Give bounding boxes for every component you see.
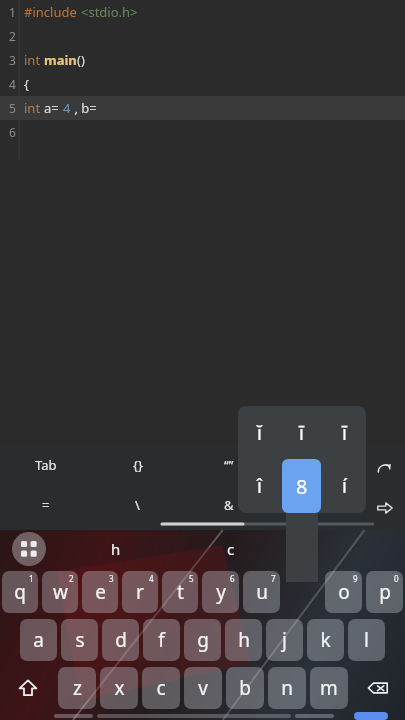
staticText: ĭ bbox=[257, 420, 262, 446]
staticText: () bbox=[77, 51, 85, 69]
staticText: 9 bbox=[353, 573, 358, 584]
button[interactable]: o bbox=[325, 571, 362, 613]
staticText: \ bbox=[135, 496, 140, 514]
staticText: b bbox=[239, 675, 251, 701]
button[interactable]: , bbox=[274, 485, 365, 525]
button[interactable]: Period bbox=[295, 714, 334, 718]
button[interactable]: 8 bbox=[282, 459, 321, 513]
button[interactable]: n bbox=[268, 667, 306, 709]
staticText: o bbox=[338, 579, 350, 605]
staticText: f bbox=[158, 627, 165, 653]
button[interactable]: ī bbox=[280, 406, 323, 459]
button[interactable]: e bbox=[82, 571, 118, 613]
staticText: 5 bbox=[189, 573, 194, 584]
staticText: { bbox=[24, 75, 29, 93]
button[interactable]: = bbox=[0, 485, 92, 525]
staticText: , b= bbox=[71, 99, 97, 117]
button[interactable]: Redo bbox=[365, 448, 405, 488]
button[interactable]: “” bbox=[183, 445, 274, 485]
button[interactable]: Enter bbox=[354, 712, 388, 720]
button[interactable]: s bbox=[61, 619, 98, 661]
button[interactable]: Menu bbox=[0, 530, 58, 568]
staticText: 6 bbox=[9, 124, 16, 140]
button[interactable]: q bbox=[2, 571, 38, 613]
staticText: ; bbox=[318, 456, 322, 474]
button[interactable]: m bbox=[310, 667, 348, 709]
staticText: h bbox=[111, 539, 121, 559]
button[interactable]: l bbox=[348, 619, 385, 661]
button[interactable]: a bbox=[20, 619, 57, 661]
staticText: #include bbox=[24, 3, 81, 21]
staticText: 5 bbox=[9, 100, 16, 116]
staticText: w bbox=[53, 579, 68, 605]
button[interactable]: j bbox=[266, 619, 303, 661]
button[interactable]: h bbox=[225, 619, 262, 661]
staticText: 3 bbox=[109, 573, 114, 584]
button[interactable]: \ bbox=[92, 485, 183, 525]
button[interactable]: Move right bbox=[365, 488, 405, 528]
staticText: q bbox=[14, 579, 26, 605]
button[interactable]: k bbox=[307, 619, 344, 661]
staticText: l bbox=[364, 627, 369, 653]
button[interactable]: z bbox=[58, 667, 96, 709]
button[interactable]: Space bbox=[97, 714, 291, 718]
button[interactable]: Backspace bbox=[350, 664, 405, 712]
button[interactable]: c bbox=[173, 530, 289, 568]
staticText: 1 bbox=[29, 573, 34, 584]
staticText: 4 bbox=[9, 76, 16, 92]
button[interactable]: t bbox=[162, 571, 198, 613]
button[interactable]: & bbox=[183, 485, 274, 525]
staticText: 6 bbox=[230, 573, 235, 584]
button[interactable]: b bbox=[226, 667, 264, 709]
staticText: ī bbox=[342, 420, 347, 446]
button[interactable]: h bbox=[58, 530, 173, 568]
staticText: a bbox=[33, 627, 44, 653]
button[interactable]: Comma bbox=[54, 714, 93, 718]
button[interactable]: p bbox=[366, 571, 403, 613]
button[interactable]: w bbox=[42, 571, 78, 613]
button[interactable]: ; bbox=[274, 445, 365, 485]
button[interactable]: ĭ bbox=[238, 406, 280, 459]
button[interactable]: r bbox=[122, 571, 158, 613]
button[interactable]: í bbox=[323, 459, 366, 513]
staticText: 3 bbox=[9, 52, 16, 68]
staticText: 4 bbox=[63, 99, 71, 117]
staticText: j bbox=[282, 627, 287, 653]
staticText: c bbox=[227, 539, 235, 559]
staticText: g bbox=[197, 627, 209, 653]
staticText: ī bbox=[299, 420, 304, 446]
button[interactable]: Shift bbox=[0, 664, 56, 712]
staticText: x bbox=[114, 675, 125, 701]
staticText: 0 bbox=[394, 573, 399, 584]
button[interactable]: {} bbox=[92, 445, 183, 485]
staticText: 4 bbox=[149, 573, 154, 584]
button[interactable]: x bbox=[100, 667, 138, 709]
staticText: m bbox=[320, 675, 338, 701]
staticText: d bbox=[115, 627, 127, 653]
staticText: h bbox=[238, 627, 250, 653]
button[interactable]: u bbox=[243, 571, 280, 613]
button[interactable]: g bbox=[184, 619, 221, 661]
staticText: n bbox=[281, 675, 293, 701]
staticText: t bbox=[177, 579, 184, 605]
staticText: {} bbox=[133, 456, 143, 474]
staticText: “” bbox=[224, 456, 234, 474]
staticText: 8 bbox=[296, 473, 308, 500]
staticText: <stdio.h> bbox=[81, 3, 138, 21]
staticText: a= bbox=[44, 99, 63, 117]
staticText: 1 bbox=[9, 4, 16, 20]
staticText: main bbox=[44, 51, 77, 69]
staticText: , bbox=[318, 496, 322, 514]
staticText: v bbox=[198, 675, 208, 701]
button[interactable]: Tab bbox=[0, 445, 92, 485]
button[interactable]: c bbox=[142, 667, 180, 709]
button[interactable]: f bbox=[143, 619, 180, 661]
staticText: 2 bbox=[9, 28, 16, 44]
staticText: s bbox=[75, 627, 85, 653]
button[interactable]: v bbox=[184, 667, 222, 709]
button[interactable]: ī bbox=[323, 406, 366, 459]
button[interactable]: î bbox=[238, 459, 280, 513]
button[interactable]: d bbox=[102, 619, 139, 661]
button[interactable]: y bbox=[202, 571, 239, 613]
staticText: í bbox=[342, 473, 347, 499]
